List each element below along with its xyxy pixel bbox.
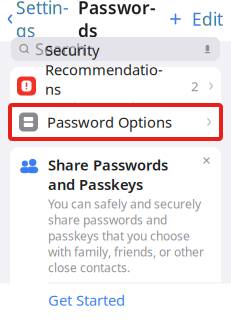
button[interactable]: Add Password: [165, 8, 186, 29]
staticText: Password Options: [47, 112, 172, 132]
staticText: Search: [35, 38, 86, 60]
button[interactable]: Dismiss: [201, 155, 212, 166]
button[interactable]: Get Started: [10, 283, 221, 317]
button[interactable]: Edit: [186, 3, 231, 34]
staticText: Security Recommendations: [45, 40, 163, 99]
staticText: You can safely and securely share passwo…: [48, 196, 204, 276]
staticText: Settings: [16, 0, 69, 42]
staticText: Edit: [192, 7, 223, 30]
staticText: 2: [191, 77, 199, 95]
staticText: Get Started: [48, 290, 125, 310]
staticText: Passwords: [78, 0, 156, 42]
button[interactable]: Settings: [0, 0, 69, 46]
button[interactable]: Security Recommendations: [10, 67, 221, 105]
button[interactable]: Password Options: [10, 105, 221, 139]
staticText: Share Passwords and Passkeys: [48, 155, 168, 194]
staticText: google.com and one more: [45, 100, 158, 132]
